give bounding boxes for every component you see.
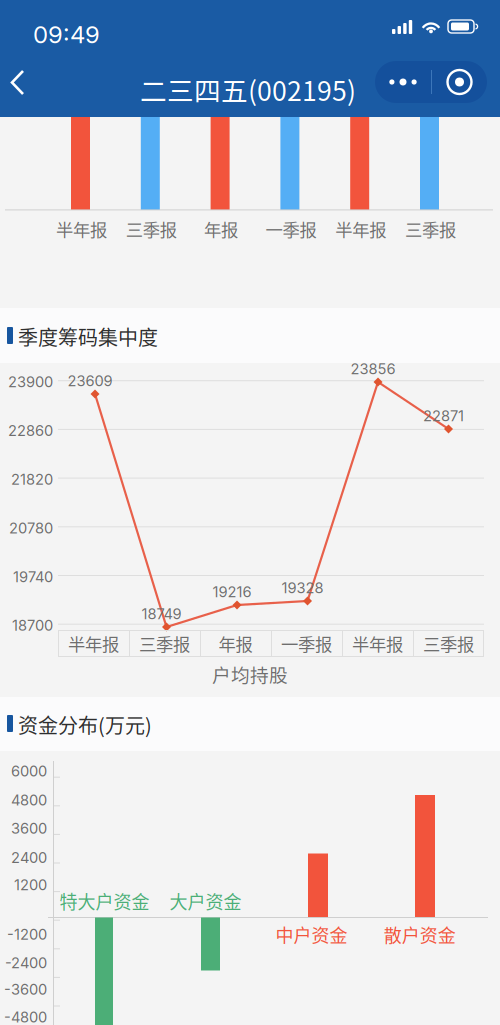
staticText: 中户资金 <box>275 921 347 947</box>
staticText: 3600 <box>11 820 47 837</box>
staticText: 二三四五(002195) <box>140 70 356 109</box>
staticText: 09:49 <box>33 20 100 49</box>
staticText: 6000 <box>11 762 47 780</box>
staticText: 资金分布(万元) <box>18 710 152 739</box>
staticText: 22860 <box>8 422 53 439</box>
staticText: 大户资金 <box>169 888 241 914</box>
staticText: 4800 <box>11 791 47 809</box>
staticText: 三季报 <box>405 216 456 242</box>
button[interactable]: Refresh <box>432 61 487 103</box>
staticText: 半年报 <box>56 216 107 242</box>
staticText: 散户资金 <box>384 921 456 947</box>
staticText: 21820 <box>11 470 53 488</box>
staticText: 户均持股 <box>212 660 288 687</box>
button[interactable]: More options <box>375 61 431 103</box>
staticText: 三季报 <box>126 216 177 242</box>
staticText: 23856 <box>350 360 395 378</box>
staticText: 23900 <box>8 373 53 391</box>
staticText: 1200 <box>14 876 47 894</box>
staticText: 半年报 <box>352 631 403 656</box>
staticText: 季度筹码集中度 <box>18 322 158 351</box>
staticText: 18700 <box>12 617 53 634</box>
staticText: -3600 <box>4 981 47 998</box>
button[interactable]: Back <box>9 62 53 104</box>
staticText: 半年报 <box>335 216 386 242</box>
staticText: 23609 <box>67 372 112 390</box>
staticText: 18749 <box>141 605 181 623</box>
staticText: 三季报 <box>423 631 474 656</box>
staticText: -2400 <box>5 954 47 972</box>
staticText: 半年报 <box>68 631 119 656</box>
staticText: 19328 <box>281 579 323 597</box>
staticText: 22871 <box>423 407 464 425</box>
staticText: 20780 <box>9 519 53 537</box>
staticText: 特大户资金 <box>59 888 149 914</box>
staticText: 一季报 <box>265 216 316 242</box>
staticText: 19740 <box>13 568 53 586</box>
staticText: 19216 <box>212 583 251 601</box>
staticText: 三季报 <box>139 631 190 656</box>
staticText: -1200 <box>7 926 47 943</box>
staticText: 年报 <box>218 631 252 656</box>
staticText: 一季报 <box>281 631 332 656</box>
staticText: 2400 <box>11 849 47 866</box>
staticText: -4800 <box>4 1008 47 1025</box>
staticText: 年报 <box>204 216 238 242</box>
